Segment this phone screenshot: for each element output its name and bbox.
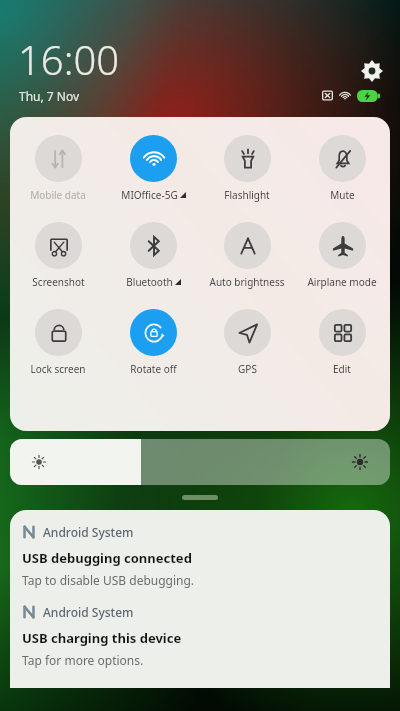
staticText: Rotate off xyxy=(130,362,177,376)
button[interactable]: Android System xyxy=(10,604,390,668)
button[interactable]: Bluetooth xyxy=(107,220,199,291)
staticText: GPS xyxy=(238,362,257,376)
button[interactable]: Screenshot xyxy=(12,220,104,291)
button[interactable]: Rotate off xyxy=(107,307,199,378)
staticText: Flashlight xyxy=(224,188,270,202)
staticText: Auto brightness xyxy=(209,275,285,289)
button[interactable]: Auto brightness xyxy=(201,220,293,291)
button[interactable]: Settings xyxy=(358,57,386,85)
staticText: Bluetooth xyxy=(126,275,173,289)
staticText: Edit xyxy=(333,362,351,376)
staticText: Android System xyxy=(43,604,134,620)
staticText: Mobile data xyxy=(30,188,86,202)
staticText: Lock screen xyxy=(30,362,86,376)
staticText: Android System xyxy=(43,524,134,540)
button[interactable]: Airplane mode xyxy=(296,220,388,291)
button[interactable]: Lock screen xyxy=(12,307,104,378)
staticText: Screenshot xyxy=(32,275,85,289)
staticText: USB debugging connected xyxy=(22,549,192,567)
button[interactable]: Android System xyxy=(10,524,390,588)
button[interactable]: MIOffice-5G xyxy=(107,133,199,204)
button[interactable]: Mute xyxy=(296,133,388,204)
button[interactable]: Mobile data xyxy=(12,133,104,204)
staticText: Thu, 7 Nov xyxy=(19,88,80,104)
staticText: 16:00 xyxy=(18,32,120,86)
button[interactable]: GPS xyxy=(201,307,293,378)
button[interactable]: Edit xyxy=(296,307,388,378)
staticText: Tap for more options. xyxy=(22,652,144,668)
staticText: USB charging this device xyxy=(22,629,182,647)
button[interactable]: Brightness xyxy=(10,439,390,485)
staticText: MIOffice-5G xyxy=(121,188,178,202)
button[interactable]: Flashlight xyxy=(201,133,293,204)
staticText: Tap to disable USB debugging. xyxy=(22,572,195,588)
staticText: Mute xyxy=(330,188,355,202)
staticText: Airplane mode xyxy=(307,275,377,289)
